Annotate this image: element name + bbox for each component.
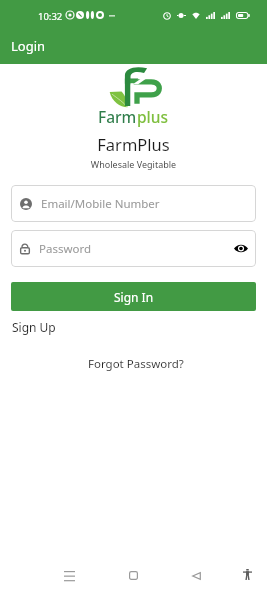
button[interactable]: Recents (57, 567, 81, 584)
button[interactable]: Password (11, 230, 256, 267)
staticText: Sign In (114, 289, 154, 305)
staticText: Sign Up (12, 319, 56, 335)
staticText: Forgot Password? (88, 356, 184, 372)
staticText: plus (137, 106, 169, 127)
button[interactable]: Sign Up (12, 319, 56, 335)
button[interactable]: Back (184, 567, 208, 584)
staticText: Login (11, 37, 46, 55)
button[interactable]: Sign In (11, 282, 256, 311)
button[interactable]: Accessibility (235, 566, 259, 583)
staticText: Email/Mobile Number (41, 196, 160, 212)
button[interactable]: Email/Mobile Number (11, 185, 256, 222)
staticText: Wholesale Vegitable (0, 158, 267, 170)
staticText: Password (39, 241, 92, 257)
staticText: FarmPlus (0, 133, 267, 155)
staticText: Farm (98, 106, 137, 127)
staticText: 10:32 (38, 10, 63, 23)
button[interactable]: Forgot Password? (88, 356, 184, 372)
other: Show password (234, 244, 248, 253)
button[interactable]: Home (121, 567, 145, 584)
